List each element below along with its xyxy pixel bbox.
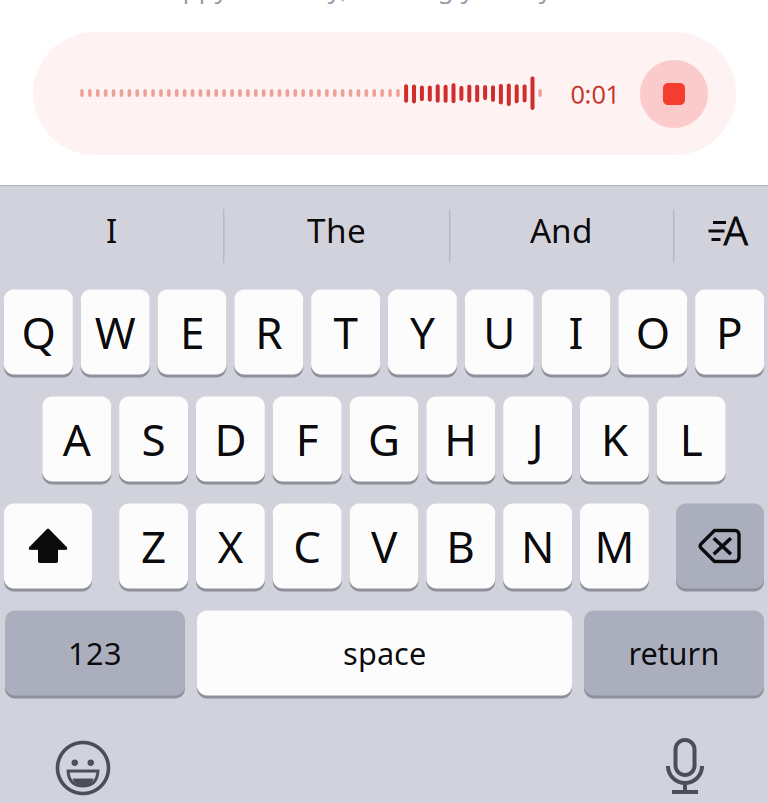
button[interactable]: C xyxy=(0,0,69,88)
button[interactable]: X xyxy=(0,0,69,88)
staticText: T xyxy=(334,303,358,361)
staticText: Y xyxy=(410,303,435,361)
button[interactable]: Text formatting xyxy=(0,0,94,80)
button[interactable]: Delete xyxy=(0,0,88,88)
button[interactable]: L xyxy=(0,0,69,88)
staticText: H xyxy=(444,410,477,468)
button[interactable]: W xyxy=(0,0,69,88)
button[interactable]: J xyxy=(0,0,69,88)
button[interactable]: G xyxy=(0,0,69,88)
button[interactable]: V xyxy=(0,0,69,88)
button[interactable]: O xyxy=(0,0,69,88)
staticText: V xyxy=(371,517,397,575)
staticText: A xyxy=(63,410,91,468)
button[interactable]: S xyxy=(0,0,69,88)
staticText: L xyxy=(680,410,703,468)
staticText: E xyxy=(180,303,204,361)
staticText: N xyxy=(521,517,554,575)
button[interactable]: D xyxy=(0,0,69,88)
button[interactable]: Y xyxy=(0,0,69,88)
staticText: space xyxy=(343,633,426,673)
staticText: K xyxy=(601,410,628,468)
button[interactable]: space xyxy=(0,0,375,88)
staticText: O xyxy=(636,303,670,361)
button[interactable]: H xyxy=(0,0,69,88)
button[interactable]: P xyxy=(0,0,69,88)
staticText: G xyxy=(368,410,400,468)
button[interactable]: A xyxy=(0,0,69,88)
button[interactable]: B xyxy=(0,0,69,88)
staticText: And xyxy=(530,208,593,252)
button[interactable]: I xyxy=(0,0,223,80)
staticText: S xyxy=(142,410,166,468)
staticText: A xyxy=(723,203,749,256)
button[interactable]: 0:01 xyxy=(0,0,703,123)
button[interactable]: Z xyxy=(0,0,69,88)
staticText: M xyxy=(594,517,634,575)
button[interactable]: M xyxy=(0,0,69,88)
staticText: return xyxy=(628,633,719,673)
button[interactable]: The xyxy=(0,0,225,80)
staticText: F xyxy=(296,410,319,468)
button[interactable]: N xyxy=(0,0,69,88)
button[interactable]: Q xyxy=(0,0,69,88)
staticText: 123 xyxy=(68,633,122,673)
staticText: U xyxy=(483,303,515,361)
staticText: W xyxy=(95,303,136,361)
staticText: I xyxy=(568,303,583,361)
button[interactable]: T xyxy=(0,0,69,88)
button[interactable]: E xyxy=(0,0,69,88)
staticText: P xyxy=(716,303,743,361)
staticText: Happy Birthday, sending you my best! xyxy=(147,0,620,5)
button[interactable]: I xyxy=(0,0,69,88)
button[interactable]: return xyxy=(0,0,180,88)
button[interactable]: K xyxy=(0,0,69,88)
staticText: The xyxy=(307,208,366,252)
staticText: B xyxy=(446,517,475,575)
staticText: I xyxy=(106,208,117,252)
button[interactable]: U xyxy=(0,0,69,88)
button[interactable]: F xyxy=(0,0,69,88)
staticText: J xyxy=(532,410,544,468)
button[interactable]: R xyxy=(0,0,69,88)
staticText: Z xyxy=(141,517,166,575)
button[interactable]: Shift xyxy=(0,0,88,88)
button[interactable]: And xyxy=(0,0,223,80)
staticText: X xyxy=(217,517,243,575)
staticText: R xyxy=(255,303,282,361)
staticText: 0:01 xyxy=(570,77,619,111)
button[interactable]: 123 xyxy=(0,0,180,88)
staticText: Q xyxy=(21,303,55,361)
staticText: C xyxy=(293,517,321,575)
staticText: D xyxy=(214,410,246,468)
